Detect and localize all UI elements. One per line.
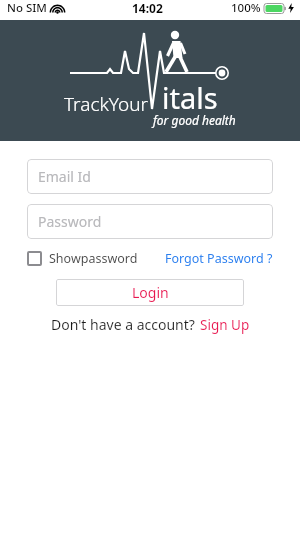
staticText: for good health [153,112,236,128]
button[interactable]: Showpassword [27,250,138,267]
staticText: Password [38,212,102,231]
button[interactable]: Forgot Password ? [165,250,273,267]
staticText: Showpassword [49,250,138,267]
staticText: No SIM [7,0,47,16]
staticText: Forgot Password ? [165,250,273,267]
staticText: 14:02 [132,0,163,16]
staticText: itals [162,78,218,117]
staticText: 100% [231,0,261,16]
button[interactable]: Email Id [27,159,273,194]
button[interactable]: Sign Up [200,316,250,334]
staticText: Email Id [38,167,91,186]
button[interactable]: Login [56,279,244,306]
staticText: TrackYour [64,91,149,117]
staticText: Login [132,283,169,302]
staticText: Sign Up [200,316,250,334]
staticText: Don't have a account? [51,315,195,334]
button[interactable]: Password [27,204,273,239]
